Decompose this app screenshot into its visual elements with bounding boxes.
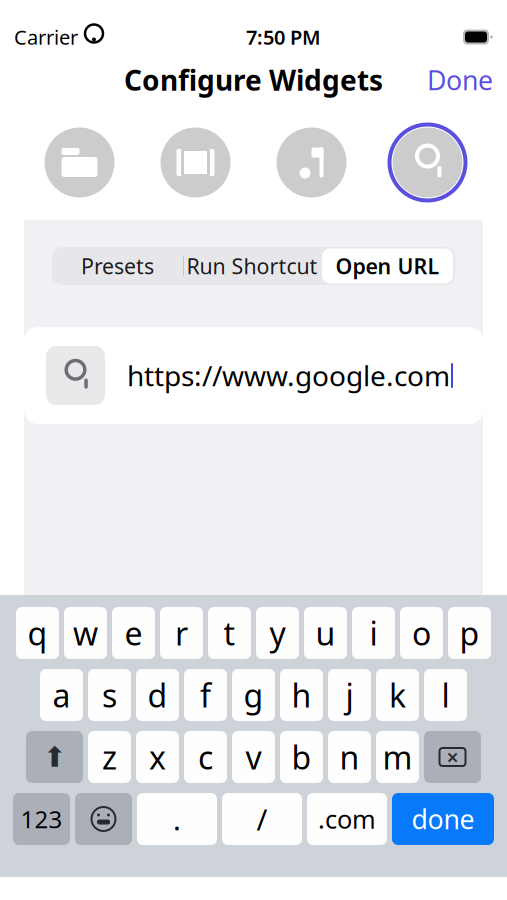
staticText: j [345,674,353,716]
staticText: Run Shortcut [186,252,317,280]
button[interactable]: c [184,731,227,783]
staticText: i [369,612,377,654]
button[interactable]: d [136,669,179,721]
button[interactable]: r [160,607,203,659]
button[interactable]: x [136,731,179,783]
button[interactable]: e [112,607,155,659]
button[interactable]: .com [307,793,387,845]
button[interactable]: Done [413,54,507,106]
staticText: s [102,674,117,716]
button[interactable]: y [256,607,299,659]
staticText: r [175,612,188,654]
staticText: g [243,674,263,716]
button[interactable]: done [392,793,494,845]
button[interactable]: f [184,669,227,721]
button[interactable]: l [424,669,467,721]
button[interactable]: Music [253,117,369,207]
button[interactable]: Files [21,117,137,207]
button[interactable]: o [400,607,443,659]
staticText: o [412,612,431,654]
button[interactable]: j [328,669,371,721]
button[interactable]: t [208,607,251,659]
staticText: p [459,612,479,654]
staticText: 123 [20,803,62,835]
staticText: f [200,674,211,716]
staticText: Configure Widgets [124,61,383,99]
staticText: c [198,736,213,778]
staticText: Presets [81,252,154,280]
button[interactable]: b [280,731,323,783]
staticText: a [52,674,70,716]
button[interactable]: w [64,607,107,659]
staticText: Open URL [335,252,439,280]
button[interactable]: p [448,607,491,659]
button[interactable]: g [232,669,275,721]
staticText: u [315,612,335,654]
button[interactable]: Delete [424,731,481,783]
button[interactable]: . [137,793,217,845]
staticText: q [27,612,47,654]
staticText: z [102,736,117,778]
button[interactable]: q [16,607,59,659]
staticText: d [147,674,167,716]
staticText: v [245,736,261,778]
button[interactable]: z [88,731,131,783]
staticText: x [149,736,166,778]
button[interactable]: s [88,669,131,721]
staticText: h [291,674,311,716]
button[interactable]: Open URL [320,246,455,285]
staticText: n [339,736,359,778]
button[interactable]: Emoji [75,793,132,845]
staticText: ⬆ [43,741,66,773]
button[interactable]: Shift [26,731,83,783]
button[interactable]: Open URL, selected [369,117,485,207]
staticText: . [173,799,181,838]
button[interactable]: m [376,731,419,783]
staticText: b [291,736,311,778]
staticText: done [411,801,474,837]
staticText: y [269,612,285,654]
staticText: l [441,674,449,716]
staticText: m [382,736,412,778]
button[interactable]: h [280,669,323,721]
staticText: e [124,612,142,654]
staticText: / [256,799,267,838]
staticText: Done [427,62,493,98]
staticText: t [223,612,235,654]
staticText: Carrier [14,24,78,50]
staticText: k [389,674,406,716]
button[interactable]: k [376,669,419,721]
button[interactable]: Run Shortcut [184,247,320,284]
staticText: × [446,743,458,771]
button[interactable]: u [304,607,347,659]
button[interactable]: Mail [137,117,253,207]
button[interactable]: Presets [52,247,183,284]
button[interactable]: a [40,669,83,721]
button[interactable]: i [352,607,395,659]
button[interactable]: / [222,793,302,845]
button[interactable]: 123 [13,793,70,845]
button[interactable]: https://www.google.com [24,327,483,424]
staticText: w [73,612,98,654]
button[interactable]: n [328,731,371,783]
staticText: https://www.google.com [127,357,450,394]
staticText: .com [318,802,376,836]
button[interactable]: v [232,731,275,783]
staticText: 7:50 PM [246,24,321,50]
